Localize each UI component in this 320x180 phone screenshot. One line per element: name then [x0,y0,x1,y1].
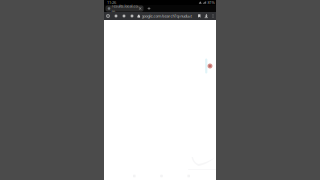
button[interactable]: Bookmark [196,12,202,20]
button[interactable]: results.local.com [105,5,143,12]
staticText: results.local.com [111,3,138,14]
staticText: 11:26 [107,0,116,5]
staticText: google.com/search?q=nudu+t [141,13,191,19]
staticText: 81% [207,0,214,5]
button[interactable]: New tab [143,5,154,12]
button[interactable]: Reload [104,12,112,20]
button[interactable]: More options [210,12,216,20]
button[interactable]: Download [202,12,210,20]
